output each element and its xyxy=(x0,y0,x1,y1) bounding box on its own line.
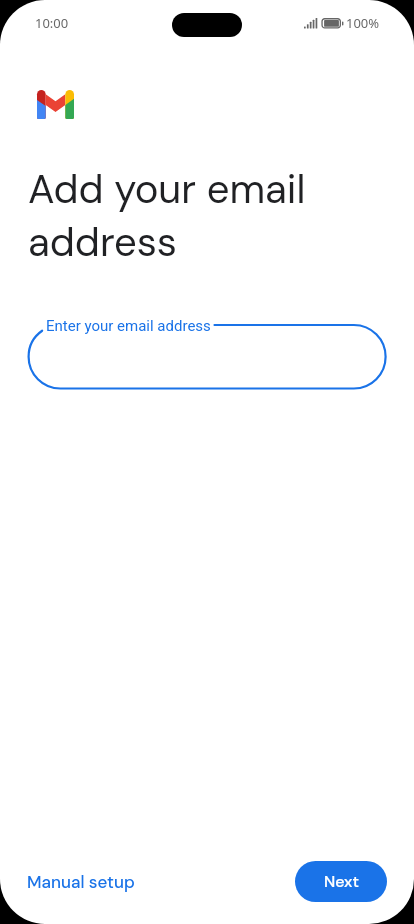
staticText: 100% xyxy=(346,14,380,32)
staticText: Next xyxy=(324,871,359,892)
button[interactable]: Manual setup xyxy=(25,867,137,897)
staticText: Add your email address xyxy=(28,163,306,268)
button[interactable]: Next xyxy=(295,861,387,902)
staticText: Manual setup xyxy=(27,871,135,893)
staticText: 10:00 xyxy=(35,14,69,32)
staticText: Enter your email address xyxy=(46,317,211,335)
button[interactable]: Enter your email address xyxy=(28,325,386,389)
